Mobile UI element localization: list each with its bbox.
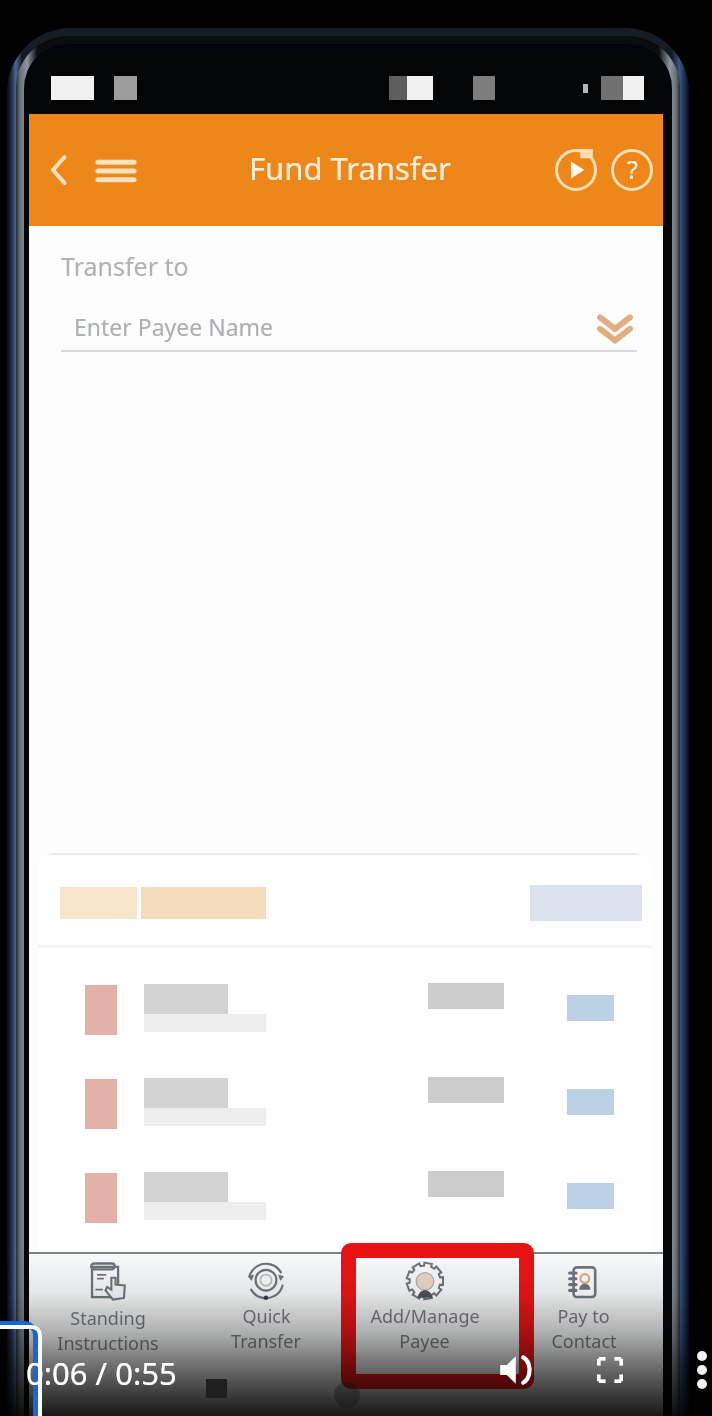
- staticText: Instructions: [57, 1331, 159, 1356]
- staticText: Payee: [399, 1329, 450, 1354]
- staticText: Standing: [70, 1306, 146, 1331]
- button[interactable]: Menu: [84, 138, 148, 202]
- button[interactable]: Enter Payee Name: [61, 306, 637, 356]
- staticText: Enter Payee Name: [74, 311, 274, 342]
- button[interactable]: Fullscreen: [584, 1344, 636, 1396]
- button[interactable]: [38, 1061, 651, 1155]
- button[interactable]: Add/Manage: [345, 1252, 504, 1416]
- button[interactable]: Pay to: [504, 1252, 663, 1416]
- staticText: Quick: [242, 1304, 291, 1329]
- button[interactable]: [38, 967, 651, 1061]
- staticText: Add/Manage: [370, 1304, 480, 1329]
- button[interactable]: Play demo: [546, 140, 606, 200]
- staticText: 0:06 / 0:55: [26, 1352, 177, 1394]
- button[interactable]: [38, 1155, 651, 1249]
- button[interactable]: Back: [29, 140, 89, 200]
- button[interactable]: More options: [692, 1348, 712, 1392]
- button[interactable]: Help: [602, 140, 662, 200]
- staticText: ?: [627, 152, 638, 186]
- staticText: Transfer to: [61, 249, 189, 283]
- button[interactable]: Select payee: [587, 300, 643, 356]
- staticText: Transfer: [231, 1329, 301, 1354]
- staticText: Pay to: [557, 1304, 610, 1329]
- button[interactable]: Standing: [29, 1252, 187, 1416]
- button[interactable]: Quick: [187, 1252, 345, 1416]
- staticText: Contact: [551, 1329, 617, 1354]
- button[interactable]: Mute: [488, 1344, 540, 1396]
- staticText: Fund Transfer: [249, 147, 451, 189]
